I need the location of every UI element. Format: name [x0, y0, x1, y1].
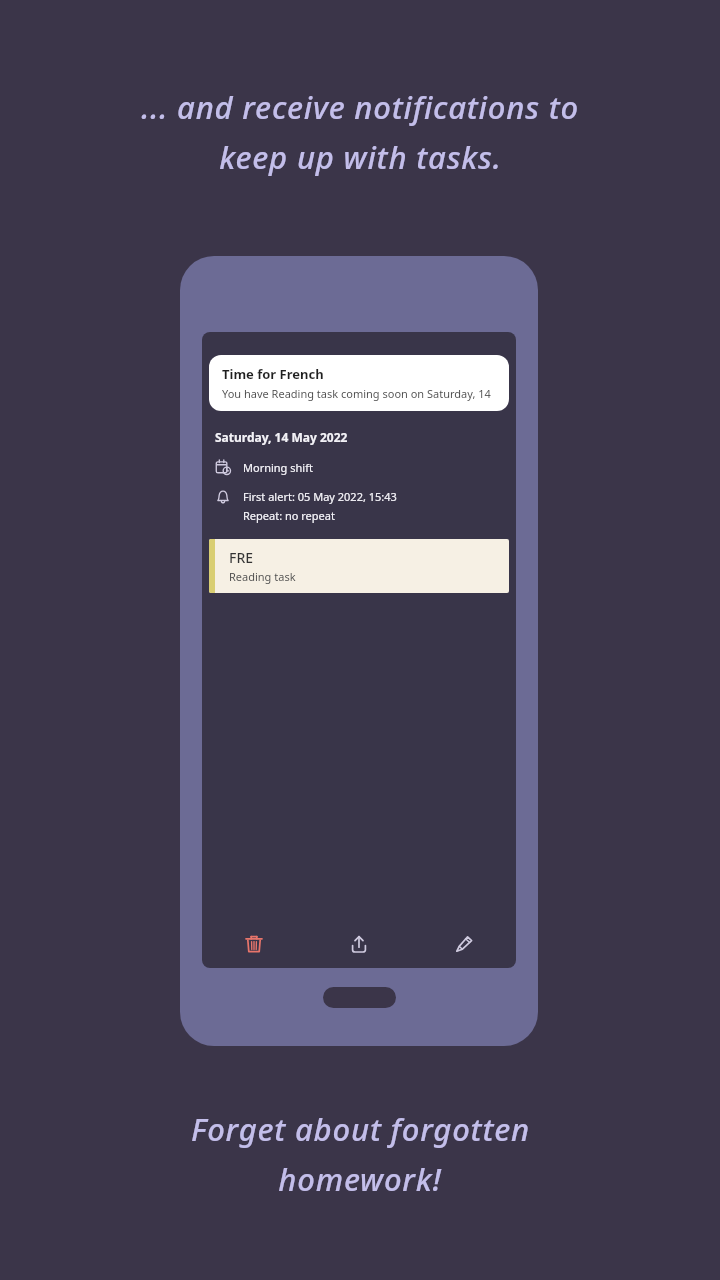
button[interactable]: Share: [306, 920, 411, 968]
other: Alert: [215, 489, 231, 505]
button[interactable]: FRE: [209, 539, 509, 593]
staticText: Saturday, 14 May 2022: [215, 429, 348, 445]
staticText: You have Reading task coming soon on Sat…: [222, 386, 499, 401]
staticText: Time for French: [222, 365, 324, 383]
other: Schedule: [215, 459, 231, 475]
button[interactable]: Alert: [202, 489, 516, 523]
staticText: Reading task: [229, 569, 296, 584]
staticText: Forget about forgotten: [191, 1108, 530, 1150]
button[interactable]: Schedule: [202, 459, 516, 475]
staticText: FRE: [229, 548, 254, 567]
button[interactable]: Edit: [411, 920, 516, 968]
button[interactable]: Delete: [202, 920, 306, 968]
button[interactable]: Time for French: [209, 355, 509, 411]
staticText: First alert: 05 May 2022, 15:43: [243, 489, 397, 504]
staticText: ... and receive notifications to: [141, 86, 579, 128]
staticText: Morning shift: [243, 460, 313, 475]
staticText: homework!: [278, 1158, 442, 1200]
staticText: Repeat: no repeat: [243, 508, 335, 523]
staticText: keep up with tasks.: [219, 136, 502, 178]
